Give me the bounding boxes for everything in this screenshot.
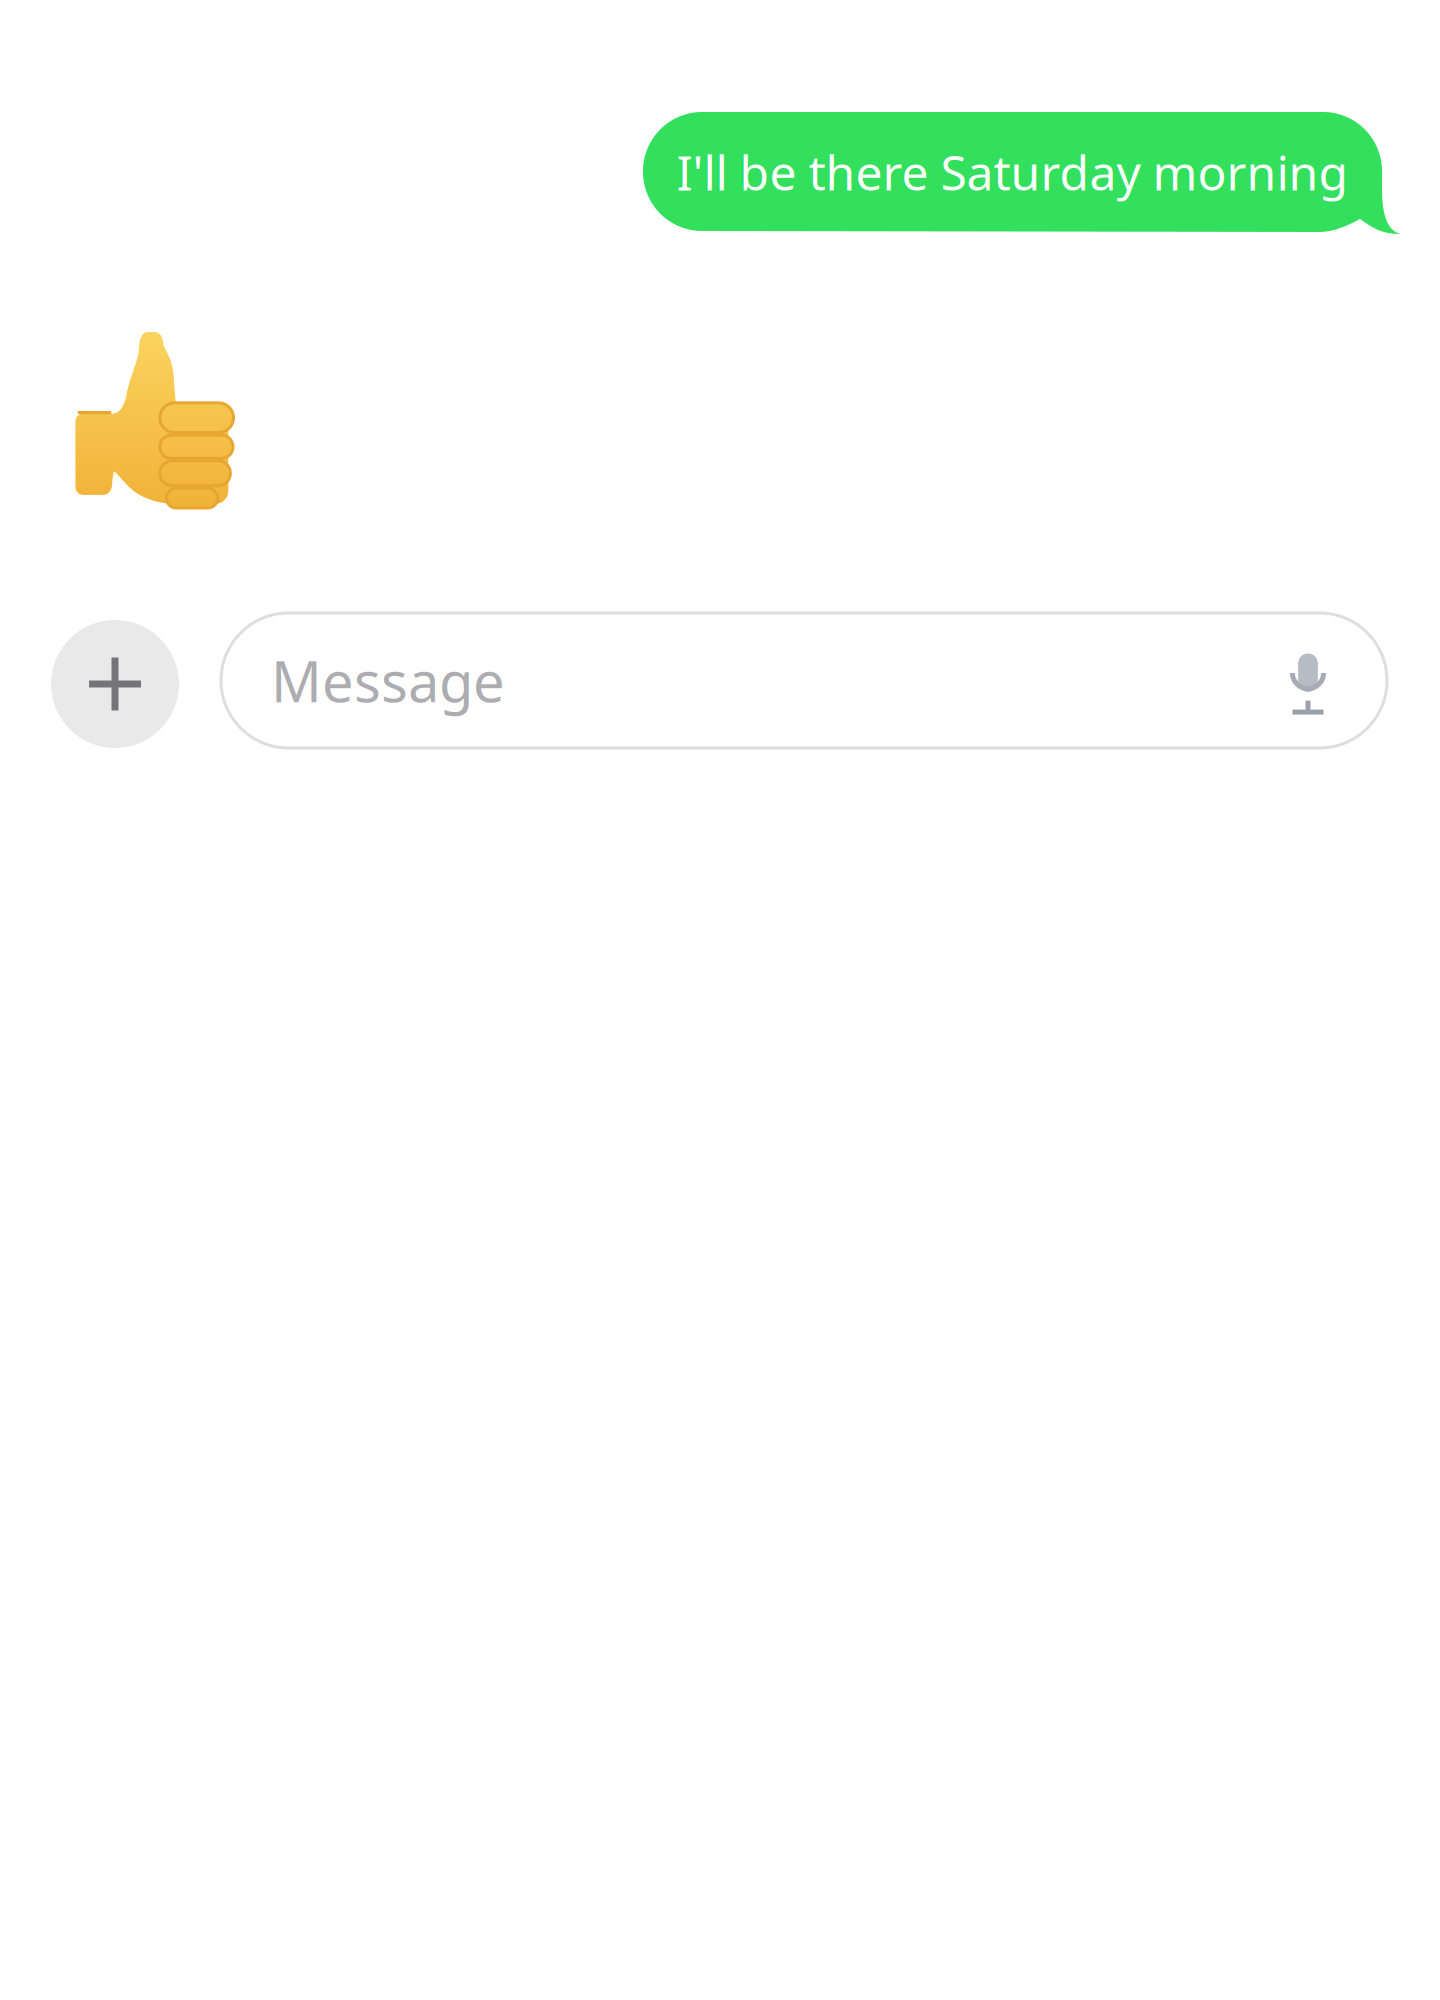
- button[interactable]: Message field: [221, 613, 1387, 748]
- button[interactable]: I'll be there Saturday morning: [643, 112, 1401, 232]
- staticText: I'll be there Saturday morning: [676, 140, 1348, 204]
- button[interactable]: Add attachment: [51, 620, 179, 748]
- staticText: Message: [271, 643, 505, 718]
